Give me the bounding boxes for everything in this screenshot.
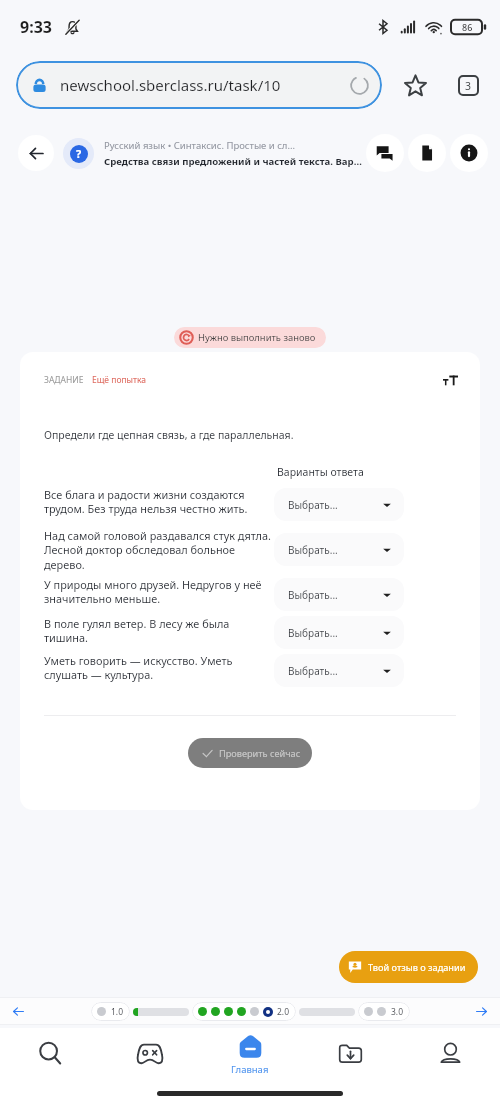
button[interactable]: Help [63, 138, 94, 169]
staticText: Определи где цепная связь, а где паралле… [44, 428, 294, 442]
button[interactable]: Info [450, 134, 488, 172]
button[interactable]: Search [0, 1028, 100, 1086]
staticText: Проверить сейчас [219, 747, 301, 760]
staticText: У природы много друзей. Недругов у неё з… [44, 577, 276, 607]
button[interactable]: Нужно выполнить заново [174, 327, 326, 348]
staticText: Выбрать... [288, 626, 338, 640]
other: Next [475, 1005, 488, 1018]
button[interactable]: Games [100, 1028, 200, 1086]
staticText: newschool.sberclass.ru/task/10 [60, 75, 343, 95]
other: Reload [349, 75, 370, 96]
other: Previous [12, 1005, 25, 1018]
button[interactable]: Выбрать... [274, 654, 404, 687]
button[interactable]: Text size [438, 368, 462, 392]
staticText: 2.0 [277, 1006, 290, 1018]
staticText: ЗАДАНИЕ [44, 374, 84, 386]
button[interactable]: 1.0 [91, 1002, 130, 1021]
staticText: 9:33 [20, 16, 52, 38]
button[interactable]: 3.0 [358, 1002, 410, 1021]
button[interactable]: Profile [400, 1028, 500, 1086]
staticText: 86 [462, 21, 473, 33]
staticText: Нужно выполнить заново [198, 331, 316, 344]
staticText: Выбрать... [288, 498, 338, 512]
staticText: Твой отзыв о задании [368, 961, 466, 974]
staticText: 1.0 [111, 1006, 124, 1018]
button[interactable]: Выбрать... [274, 533, 404, 566]
staticText: Выбрать... [288, 664, 338, 678]
button[interactable]: Tabs [448, 63, 488, 108]
button[interactable]: Back [18, 135, 54, 171]
staticText: В поле гулял ветер. В лесу же была тишин… [44, 616, 276, 646]
staticText: Уметь говорить — искусство. Уметь слушат… [44, 653, 276, 683]
staticText: Средства связи предложений и частей текс… [104, 155, 364, 168]
button[interactable]: Ещё попытка [92, 374, 147, 386]
button[interactable]: Твой отзыв о задании [339, 951, 478, 983]
staticText: Варианты ответа [277, 465, 364, 479]
button[interactable]: Comments [366, 134, 404, 172]
staticText: 3.0 [391, 1006, 404, 1018]
button[interactable]: Главная [200, 1028, 300, 1086]
button[interactable]: Document [408, 134, 446, 172]
button[interactable]: newschool.sberclass.ru/task/10 [16, 61, 382, 109]
staticText: Все блага и радости жизни создаются труд… [44, 487, 276, 517]
button[interactable]: Выбрать... [274, 578, 404, 611]
staticText: Главная [231, 1063, 269, 1076]
staticText: Выбрать... [288, 543, 338, 557]
button[interactable]: Проверить сейчас [188, 738, 312, 768]
button[interactable]: 2.0 [192, 1002, 296, 1021]
staticText: 3 [465, 79, 472, 93]
staticText: Выбрать... [288, 588, 338, 602]
button[interactable]: Bookmark [393, 63, 437, 108]
staticText: Над самой головой раздавался стук дятла.… [44, 528, 276, 573]
button[interactable]: Выбрать... [274, 616, 404, 649]
staticText: Русский язык • Синтаксис. Простые и сл..… [104, 139, 296, 152]
staticText: ? [76, 146, 82, 161]
button[interactable]: Выбрать... [274, 488, 404, 521]
button[interactable]: Downloads [300, 1028, 400, 1086]
